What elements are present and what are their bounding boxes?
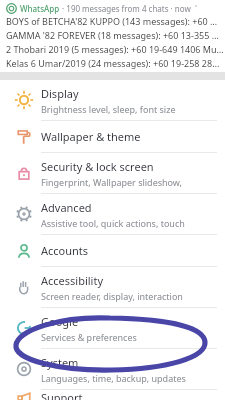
button[interactable]: Accessibility — [0, 267, 225, 307]
staticText: Accounts — [41, 243, 89, 258]
staticText: BOYS of BETCHA'82 KUPPO (143 messages): … — [6, 15, 218, 27]
staticText: Fingerprint, Wallpaper slideshow, Locati… — [41, 176, 217, 188]
button[interactable]: Support — [0, 390, 225, 400]
staticText: Languages, time, backup, updates — [41, 372, 186, 384]
button[interactable]: Security & lock screen — [0, 153, 225, 193]
staticText: Support — [41, 390, 83, 400]
staticText: Screen reader, display, interaction cont… — [41, 290, 217, 302]
staticText: Advanced — [41, 200, 92, 215]
staticText: 2 Thobari 2019 (5 messages): +60 19-649 … — [6, 43, 224, 55]
button[interactable]: Wallpaper & theme — [0, 121, 225, 152]
staticText: GAMMA '82 FOREVER (18 messages): +60 13-… — [6, 29, 219, 41]
staticText: WhatsApp — [20, 3, 60, 14]
staticText: Accessibility — [41, 273, 104, 288]
staticText: Security & lock screen — [41, 159, 154, 174]
staticText: Kelas 6 Umar/2019 (24 messages): +60 19-… — [6, 57, 220, 69]
button[interactable]: Accounts — [0, 235, 225, 266]
staticText: · 190 messages from 4 chats · now ˅ — [60, 3, 198, 14]
staticText: Services & preferences — [41, 331, 137, 343]
staticText: Wallpaper & theme — [41, 129, 141, 144]
staticText: Assistive tool, quick actions, touch sen… — [41, 217, 217, 229]
staticText: Google — [41, 314, 79, 329]
button[interactable]: System — [0, 349, 225, 389]
button[interactable]: Advanced — [0, 194, 225, 234]
staticText: Brightness level, sleep, font size — [41, 103, 176, 115]
button[interactable]: Display — [0, 80, 225, 120]
staticText: System — [41, 355, 79, 370]
button[interactable]: Google — [0, 308, 225, 348]
staticText: Display — [41, 86, 79, 101]
